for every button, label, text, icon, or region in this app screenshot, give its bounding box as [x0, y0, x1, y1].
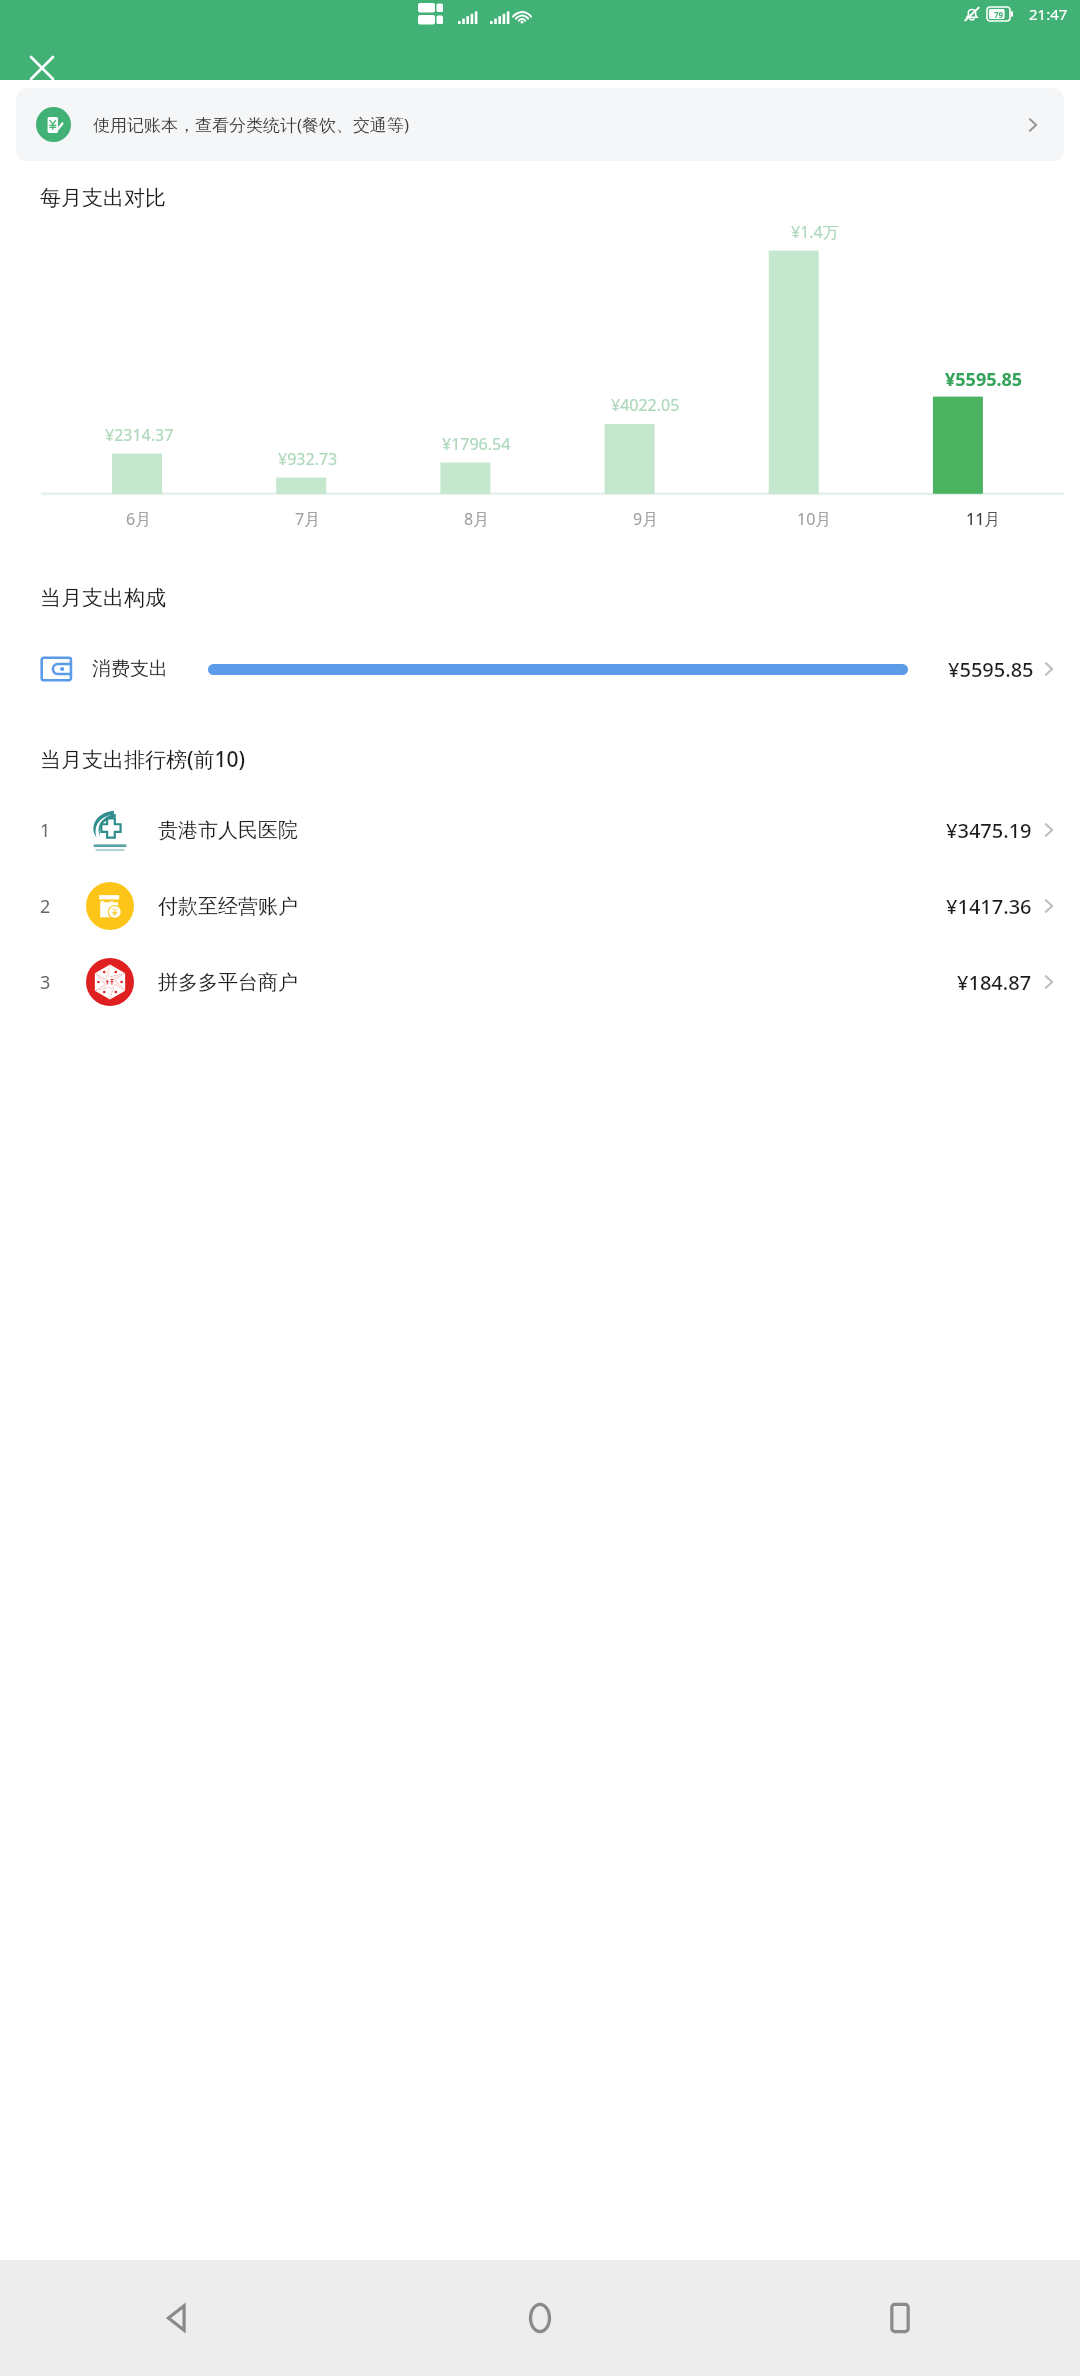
button[interactable]: 2: [0, 868, 1080, 944]
staticText: 8月: [464, 508, 490, 530]
staticText: 当月支出排行榜(前10): [40, 745, 246, 774]
staticText: ¥5595.85: [945, 367, 1023, 392]
staticText: 6月: [126, 508, 152, 530]
other: 进入: [1022, 114, 1044, 136]
button[interactable]: 关闭: [18, 44, 66, 92]
staticText: ¥932.73: [278, 448, 338, 470]
staticText: 9月: [633, 508, 659, 530]
staticText: ¥4022.05: [611, 394, 680, 416]
staticText: 使用记账本，查看分类统计(餐饮、交通等): [93, 113, 410, 136]
staticText: 拼多多平台商户: [158, 970, 298, 995]
staticText: ¥2314.37: [105, 424, 174, 446]
staticText: ¥1796.54: [442, 433, 511, 455]
staticText: 10月: [797, 508, 832, 530]
button[interactable]: 1: [0, 792, 1080, 868]
button[interactable]: 3: [0, 944, 1080, 1020]
button[interactable]: 返回: [0, 2260, 360, 2376]
button[interactable]: 使用记账本，查看分类统计(餐饮、交通等): [16, 88, 1064, 161]
staticText: 付款至经营账户: [158, 894, 298, 919]
button[interactable]: 主页: [360, 2260, 720, 2376]
staticText: 21:47: [1029, 4, 1068, 24]
staticText: ¥1.4万: [791, 221, 839, 243]
staticText: 消费支出: [92, 657, 168, 681]
staticText: ¥1417.36: [946, 893, 1032, 920]
staticText: 79: [994, 9, 1004, 20]
button[interactable]: 消费支出: [0, 637, 1080, 701]
staticText: 1: [40, 818, 51, 843]
staticText: 每月支出对比: [40, 185, 166, 211]
staticText: 7月: [295, 508, 321, 530]
staticText: 3: [40, 970, 51, 995]
staticText: ¥5595.85: [948, 656, 1034, 683]
button[interactable]: 最近任务: [720, 2260, 1080, 2376]
staticText: 当月支出构成: [40, 585, 166, 611]
staticText: 11月: [966, 508, 1001, 530]
staticText: 贵港市人民医院: [158, 818, 298, 843]
staticText: 2: [40, 894, 51, 919]
staticText: ¥184.87: [957, 969, 1032, 996]
staticText: ¥3475.19: [946, 817, 1032, 844]
